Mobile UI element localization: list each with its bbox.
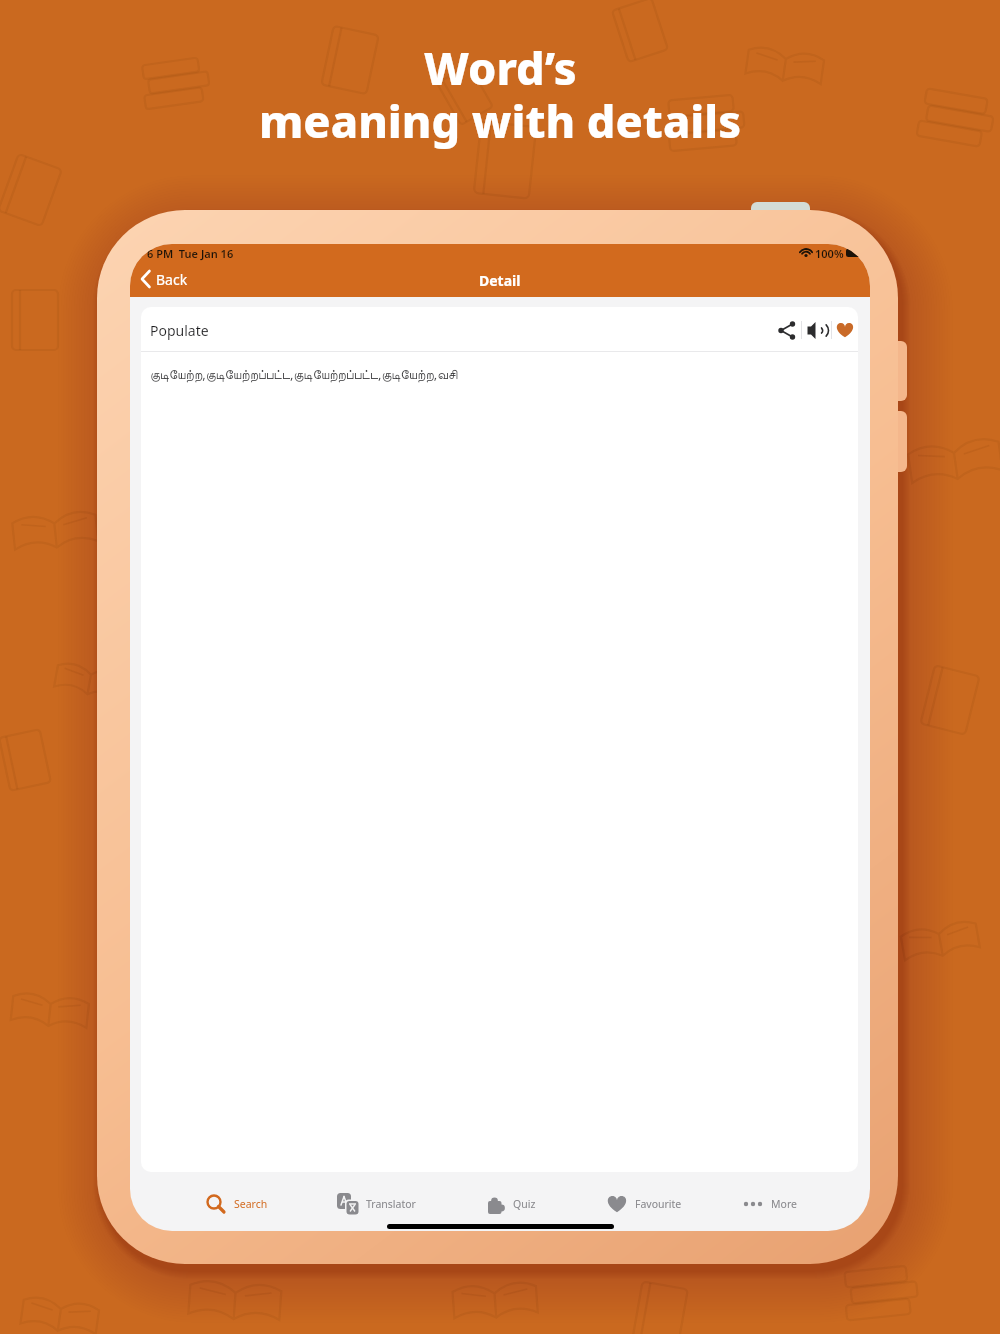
staticText: Search — [234, 1197, 268, 1211]
staticText: 6 PM Tue Jan 16 — [147, 246, 234, 261]
button[interactable]: More — [742, 1192, 797, 1216]
staticText: Back — [156, 270, 188, 289]
button[interactable]: Translator — [337, 1192, 416, 1216]
button[interactable] — [829, 315, 858, 346]
button[interactable]: Quiz — [484, 1192, 536, 1216]
staticText: Translator — [366, 1197, 416, 1211]
button[interactable] — [799, 315, 830, 346]
staticText: Word’s — [424, 37, 577, 98]
staticText: 100% — [815, 246, 844, 261]
staticText: Favourite — [635, 1197, 682, 1211]
staticText: Quiz — [513, 1197, 536, 1211]
button[interactable]: Back — [141, 269, 188, 289]
staticText: More — [771, 1197, 797, 1211]
button[interactable]: Search — [205, 1192, 268, 1216]
staticText: Populate — [150, 321, 209, 340]
staticText: meaning with details — [259, 90, 742, 151]
button[interactable] — [771, 315, 802, 346]
staticText: Detail — [479, 271, 521, 290]
staticText: குடியேற்ற,குடியேற்றப்பட்ட,குடியேற்றப்பட்… — [150, 365, 458, 383]
button[interactable]: Favourite — [606, 1192, 682, 1216]
